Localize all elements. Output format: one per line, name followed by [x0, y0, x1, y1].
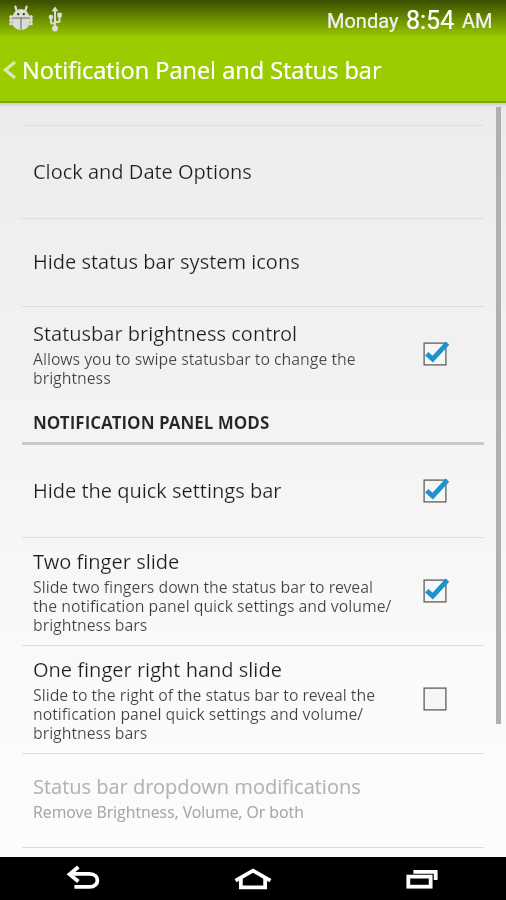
- staticText: Two finger slide: [33, 550, 180, 574]
- staticText: One finger right hand slide: [33, 658, 282, 682]
- button[interactable]: Hide the quick settings bar: [0, 445, 506, 537]
- button[interactable]: Toggle setting: [412, 331, 458, 377]
- button[interactable]: Hide status bar system icons: [0, 218, 506, 306]
- button[interactable]: One finger right hand slide: [0, 645, 506, 753]
- button[interactable]: Toggle setting: [412, 568, 458, 614]
- button: NOTIFICATION PANEL MODS: [0, 405, 506, 439]
- staticText: AM: [462, 9, 493, 32]
- staticText: Status bar dropdown modifications: [33, 775, 361, 799]
- button[interactable]: Toggle setting: [412, 676, 458, 722]
- button[interactable]: Statusbar brightness control: [0, 306, 506, 433]
- button[interactable]: Back: [0, 857, 168, 900]
- staticText: Clock and Date Options: [33, 160, 252, 184]
- button[interactable]: Clock and Date Options: [0, 125, 506, 218]
- button[interactable]: Recent apps: [337, 857, 506, 900]
- button[interactable]: Toggle setting: [412, 468, 458, 514]
- staticText: NOTIFICATION PANEL MODS: [33, 411, 270, 434]
- staticText: 8:54: [406, 6, 455, 35]
- staticText: Slide two fingers down the status bar to…: [33, 578, 392, 635]
- staticText: Hide the quick settings bar: [33, 479, 282, 503]
- staticText: Slide to the right of the status bar to …: [33, 686, 376, 743]
- button[interactable]: Two finger slide: [0, 537, 506, 645]
- staticText: Remove Brightness, Volume, Or both: [33, 803, 304, 822]
- staticText: Hide status bar system icons: [33, 250, 300, 274]
- button[interactable]: Status bar dropdown modifications: [0, 753, 506, 847]
- staticText: Allows you to swipe statusbar to change …: [33, 350, 356, 388]
- button[interactable]: Notification Panel and Status bar: [0, 38, 506, 101]
- staticText: Notification Panel and Status bar: [22, 54, 382, 86]
- staticText: Statusbar brightness control: [33, 322, 298, 346]
- staticText: Monday: [327, 9, 399, 32]
- button[interactable]: Home: [168, 857, 337, 900]
